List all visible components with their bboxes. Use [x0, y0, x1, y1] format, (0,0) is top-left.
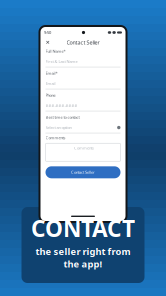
staticText: the app!: [63, 258, 102, 270]
staticText: ###-###-####: [45, 103, 77, 108]
button[interactable]: Close: [43, 38, 51, 46]
staticText: Email: [45, 81, 55, 86]
staticText: Select an option: [45, 125, 71, 130]
staticText: Comments: [45, 135, 65, 140]
staticText: the seller right from: [35, 245, 130, 258]
button[interactable]: Contact Seller: [45, 166, 120, 178]
staticText: Email*: [45, 71, 57, 76]
staticText: First & Last Name: [45, 59, 77, 64]
staticText: Phone: [45, 93, 55, 98]
button[interactable]: Best time to contact: [45, 125, 120, 130]
staticText: 9:50: [44, 30, 51, 35]
staticText: Contact Seller: [71, 170, 95, 175]
staticText: Comments: [74, 145, 94, 151]
staticText: Full Name*: [45, 49, 65, 54]
staticText: ✕: [45, 39, 49, 46]
staticText: Best time to contact: [45, 115, 79, 120]
staticText: Contact Seller: [66, 39, 99, 46]
staticText: CONTACT: [31, 213, 135, 243]
